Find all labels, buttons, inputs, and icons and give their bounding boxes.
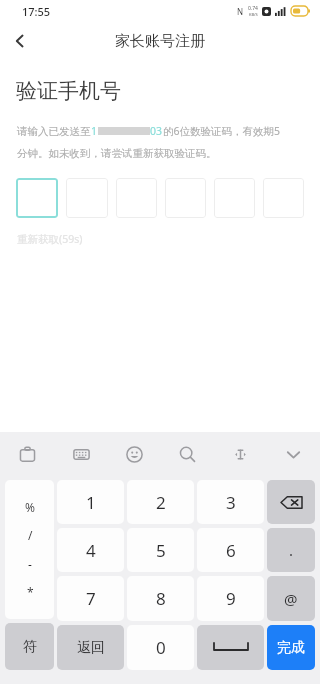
- button[interactable]: 返回: [57, 625, 124, 670]
- staticText: 完成: [277, 639, 305, 657]
- button[interactable]: Search: [161, 432, 214, 476]
- button[interactable]: Backspace: [267, 480, 315, 524]
- staticText: N: [237, 6, 244, 17]
- button[interactable]: 2: [127, 480, 194, 524]
- button[interactable]: [263, 178, 304, 218]
- button[interactable]: .: [267, 528, 315, 572]
- staticText: 请输入已发送至: [17, 125, 91, 138]
- staticText: %: [25, 499, 35, 515]
- staticText: 6: [226, 539, 236, 562]
- staticText: 的6位数验证码，有效期5: [163, 124, 281, 138]
- staticText: 8: [156, 587, 166, 610]
- staticText: 0: [156, 636, 166, 659]
- button[interactable]: [165, 178, 206, 218]
- button[interactable]: 8: [127, 576, 194, 621]
- staticText: 5: [156, 539, 166, 562]
- button[interactable]: 符: [5, 623, 54, 670]
- staticText: *: [27, 584, 34, 600]
- staticText: @: [284, 589, 298, 609]
- staticText: 7: [86, 587, 96, 610]
- button[interactable]: Emoji: [108, 432, 161, 476]
- button[interactable]: 4: [57, 528, 124, 572]
- staticText: -: [28, 556, 32, 572]
- staticText: 分钟。如未收到，请尝试重新获取验证码。: [17, 147, 217, 160]
- staticText: KB/S: [249, 12, 258, 17]
- button[interactable]: 9: [197, 576, 264, 621]
- button[interactable]: 6: [197, 528, 264, 572]
- button[interactable]: 重新获取(59s): [17, 232, 83, 246]
- button[interactable]: Keyboard layout: [54, 432, 108, 476]
- button[interactable]: [214, 178, 255, 218]
- button[interactable]: @: [267, 576, 315, 621]
- staticText: 17:55: [22, 4, 51, 19]
- staticText: 验证手机号: [16, 78, 121, 104]
- button[interactable]: [66, 178, 108, 218]
- staticText: 返回: [77, 639, 105, 657]
- button[interactable]: 完成: [267, 625, 315, 670]
- button[interactable]: [16, 178, 58, 218]
- staticText: 03: [150, 124, 163, 138]
- button[interactable]: Hide keyboard: [267, 432, 320, 476]
- button[interactable]: 3: [197, 480, 264, 524]
- button[interactable]: 0: [127, 625, 194, 670]
- button[interactable]: 7: [57, 576, 124, 621]
- staticText: 符: [23, 638, 37, 656]
- staticText: 3: [226, 491, 236, 514]
- staticText: 家长账号注册: [115, 32, 205, 51]
- button[interactable]: %: [5, 480, 54, 619]
- staticText: 9: [226, 587, 236, 610]
- button[interactable]: 1: [57, 480, 124, 524]
- staticText: /: [28, 527, 33, 543]
- button[interactable]: Clipboard: [0, 432, 54, 476]
- staticText: 1: [91, 124, 98, 138]
- staticText: 0.74: [248, 5, 258, 12]
- button[interactable]: [116, 178, 157, 218]
- button[interactable]: Space: [197, 625, 264, 670]
- button[interactable]: Move cursor: [214, 432, 267, 476]
- staticText: 4: [86, 539, 96, 562]
- staticText: .: [289, 540, 294, 560]
- button[interactable]: Back: [0, 22, 40, 60]
- staticText: 1: [86, 491, 96, 514]
- staticText: 2: [156, 491, 166, 514]
- button[interactable]: 5: [127, 528, 194, 572]
